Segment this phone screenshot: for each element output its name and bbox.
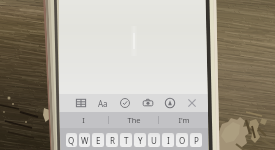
staticText: O	[179, 135, 186, 146]
button[interactable]: Close	[185, 96, 199, 110]
button[interactable]: The	[109, 112, 158, 128]
button[interactable]: Q	[66, 133, 77, 147]
staticText: I	[82, 115, 85, 125]
button[interactable]: R	[106, 133, 118, 147]
button[interactable]: T	[120, 133, 132, 147]
button[interactable]: I'm	[159, 112, 206, 128]
staticText: P	[194, 135, 199, 146]
staticText: I	[167, 135, 170, 146]
staticText: U	[151, 135, 157, 146]
button[interactable]: I	[59, 112, 108, 128]
staticText: Q	[68, 135, 75, 146]
staticText: The	[127, 115, 141, 125]
staticText: R	[110, 135, 115, 146]
button[interactable]: W	[79, 133, 90, 147]
button[interactable]: U	[148, 133, 160, 147]
button[interactable]: Checklist	[118, 96, 132, 110]
staticText: T	[124, 135, 129, 146]
button[interactable]: Y	[134, 133, 146, 147]
button[interactable]: Camera	[141, 96, 155, 110]
staticText: W	[81, 135, 89, 146]
button[interactable]: O	[176, 133, 188, 147]
button[interactable]: P	[190, 133, 202, 147]
staticText: E	[96, 135, 101, 146]
staticText: Aa	[98, 98, 108, 109]
staticText: Y	[138, 135, 143, 146]
button[interactable]: Markup	[163, 96, 177, 110]
button[interactable]: Table	[74, 96, 88, 110]
button[interactable]: E	[92, 133, 104, 147]
staticText: I'm	[178, 115, 190, 125]
button[interactable]: Aa	[96, 96, 110, 110]
button[interactable]: I	[162, 133, 174, 147]
